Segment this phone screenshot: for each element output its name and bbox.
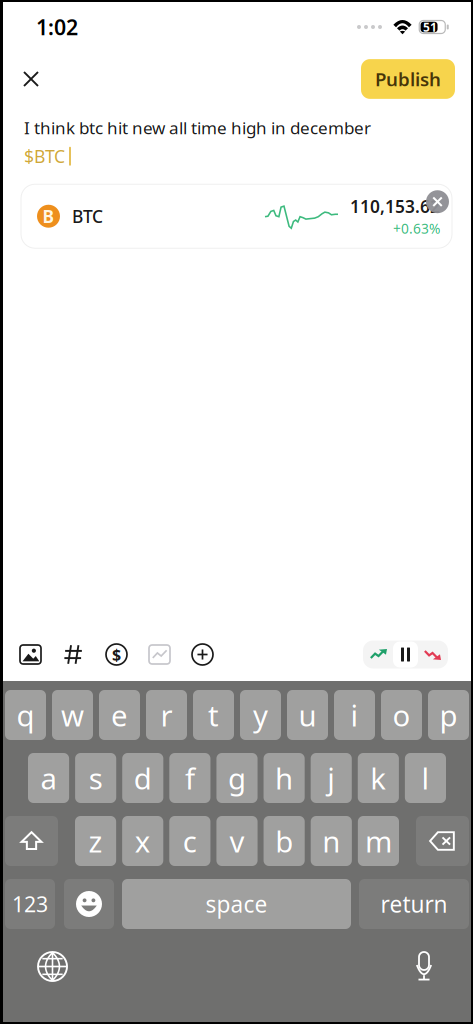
button[interactable]: q [5, 690, 46, 740]
staticText: $BTC [24, 144, 65, 168]
staticText: k [370, 758, 386, 797]
button[interactable]: u [287, 690, 328, 740]
button[interactable]: m [358, 816, 399, 866]
button[interactable]: g [216, 753, 257, 803]
staticText: y [253, 695, 268, 734]
staticText: I think btc hit new all time high in dec… [24, 116, 371, 139]
button[interactable]: y [240, 690, 281, 740]
button[interactable]: r [146, 690, 187, 740]
button[interactable]: Dictate [401, 941, 447, 992]
staticText: f [185, 758, 195, 797]
staticText: i [350, 695, 358, 734]
staticText: Publish [375, 67, 441, 91]
button[interactable]: Shift [5, 816, 58, 866]
button[interactable]: Switch keyboard [27, 941, 78, 992]
staticText: s [89, 758, 103, 797]
button[interactable]: Bearish [418, 641, 447, 667]
staticText: 123 [12, 890, 48, 918]
button[interactable]: Add photo [9, 630, 52, 679]
button[interactable]: f [169, 753, 210, 803]
button[interactable]: Neutral [393, 641, 418, 667]
staticText: l [421, 758, 429, 797]
button[interactable]: t [193, 690, 234, 740]
button[interactable]: x [122, 816, 163, 866]
button[interactable]: w [52, 690, 93, 740]
button[interactable]: space [122, 879, 351, 929]
button[interactable]: Remove token [426, 190, 449, 213]
staticText: r [160, 695, 172, 734]
staticText: +0.63% [393, 219, 440, 238]
staticText: d [134, 758, 152, 797]
button[interactable]: s [75, 753, 116, 803]
staticText: return [380, 889, 447, 919]
button[interactable]: n [311, 816, 352, 866]
button[interactable]: b [264, 816, 305, 866]
button[interactable]: Add chart [138, 630, 181, 679]
staticText: w [61, 695, 84, 734]
staticText: t [208, 695, 219, 734]
staticText: g [228, 758, 246, 797]
button[interactable]: j [311, 753, 352, 803]
staticText: x [135, 821, 151, 860]
button[interactable]: Delete [416, 816, 469, 866]
staticText: e [111, 695, 128, 734]
button[interactable]: z [75, 816, 116, 866]
button[interactable]: d [122, 753, 163, 803]
staticText: u [298, 695, 316, 734]
staticText: BTC [72, 204, 103, 228]
button[interactable]: Add ticker [95, 630, 138, 679]
button[interactable]: More [181, 630, 224, 679]
staticText: 110,153.62 [350, 195, 440, 218]
staticText: j [327, 758, 335, 797]
button[interactable]: k [358, 753, 399, 803]
button[interactable]: Add hashtag [52, 630, 95, 679]
button[interactable]: l [405, 753, 446, 803]
staticText: 51 [423, 19, 437, 35]
staticText: B [42, 205, 54, 228]
button[interactable]: Emoji [64, 879, 114, 929]
button[interactable]: Publish [361, 59, 455, 99]
staticText: n [322, 821, 340, 860]
staticText: b [275, 821, 293, 860]
staticText: o [392, 695, 410, 734]
staticText: v [229, 821, 244, 860]
button[interactable]: i [334, 690, 375, 740]
button[interactable]: return [359, 879, 469, 929]
staticText: h [275, 758, 293, 797]
staticText: space [205, 889, 267, 919]
button[interactable]: o [381, 690, 422, 740]
button[interactable]: e [99, 690, 140, 740]
button[interactable]: h [264, 753, 305, 803]
button[interactable]: v [216, 816, 257, 866]
button[interactable]: Bullish [364, 641, 393, 667]
button[interactable]: c [169, 816, 210, 866]
staticText: $ [112, 644, 121, 665]
staticText: q [16, 695, 34, 734]
button[interactable]: 123 [5, 879, 55, 929]
staticText: p [439, 695, 457, 734]
button[interactable]: p [428, 690, 469, 740]
button[interactable]: Close [13, 60, 49, 98]
staticText: m [365, 821, 392, 860]
staticText: c [183, 821, 197, 860]
staticText: a [41, 758, 57, 797]
staticText: 1:02 [36, 13, 78, 41]
button[interactable]: a [28, 753, 69, 803]
staticText: z [89, 821, 103, 860]
